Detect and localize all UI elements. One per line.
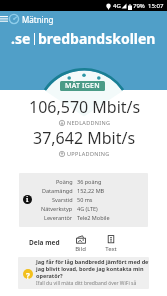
button[interactable]: MÄT IGEN bbox=[60, 81, 105, 91]
staticText: 37,642 Mbit/s bbox=[33, 127, 136, 149]
button[interactable]: Open navigation menu bbox=[0, 11, 8, 27]
staticText: MÄT IGEN bbox=[65, 81, 100, 91]
staticText: 4G (LTE) bbox=[77, 205, 98, 212]
staticText: Mätning bbox=[22, 14, 54, 25]
staticText: i bbox=[26, 195, 29, 204]
staticText: Dela med bbox=[29, 238, 60, 247]
staticText: bredbandskollen bbox=[38, 29, 156, 48]
staticText: 15:07 bbox=[148, 2, 164, 10]
staticText: UPPLADDNING bbox=[67, 150, 110, 157]
staticText: operatör? bbox=[36, 272, 63, 279]
staticText: 152,22 MB bbox=[77, 187, 105, 194]
staticText: ? bbox=[26, 270, 30, 281]
staticText: Ifall du vill mäta ditt bredband över Wi… bbox=[36, 280, 137, 287]
button[interactable]: Text bbox=[104, 235, 118, 253]
staticText: 50 ms bbox=[77, 196, 93, 203]
staticText: Bild bbox=[75, 245, 86, 253]
staticText: 36 poäng bbox=[77, 178, 102, 185]
button[interactable]: Bild bbox=[74, 235, 87, 253]
staticText: 106,570 Mbit/s bbox=[29, 96, 141, 118]
staticText: Svarstid bbox=[52, 196, 73, 203]
staticText: 79% bbox=[133, 2, 145, 10]
button[interactable]: ? bbox=[18, 257, 149, 289]
staticText: Nätverkstyp bbox=[41, 205, 73, 212]
staticText: NEDLADDNING bbox=[67, 119, 111, 126]
staticText: Datamängd bbox=[42, 187, 73, 194]
staticText: Jag får för låg bandbredd jämfört med de… bbox=[36, 258, 149, 265]
staticText: Tele2 Mobile bbox=[77, 214, 110, 221]
staticText: Leverantör bbox=[44, 214, 73, 221]
staticText: jag blivit lovad, borde jag kontakta min bbox=[36, 265, 144, 272]
staticText: .se bbox=[11, 29, 31, 48]
staticText: 4G bbox=[113, 2, 121, 10]
staticText: Text bbox=[105, 245, 117, 253]
staticText: Poäng bbox=[56, 178, 73, 185]
button[interactable]: i bbox=[19, 173, 148, 227]
